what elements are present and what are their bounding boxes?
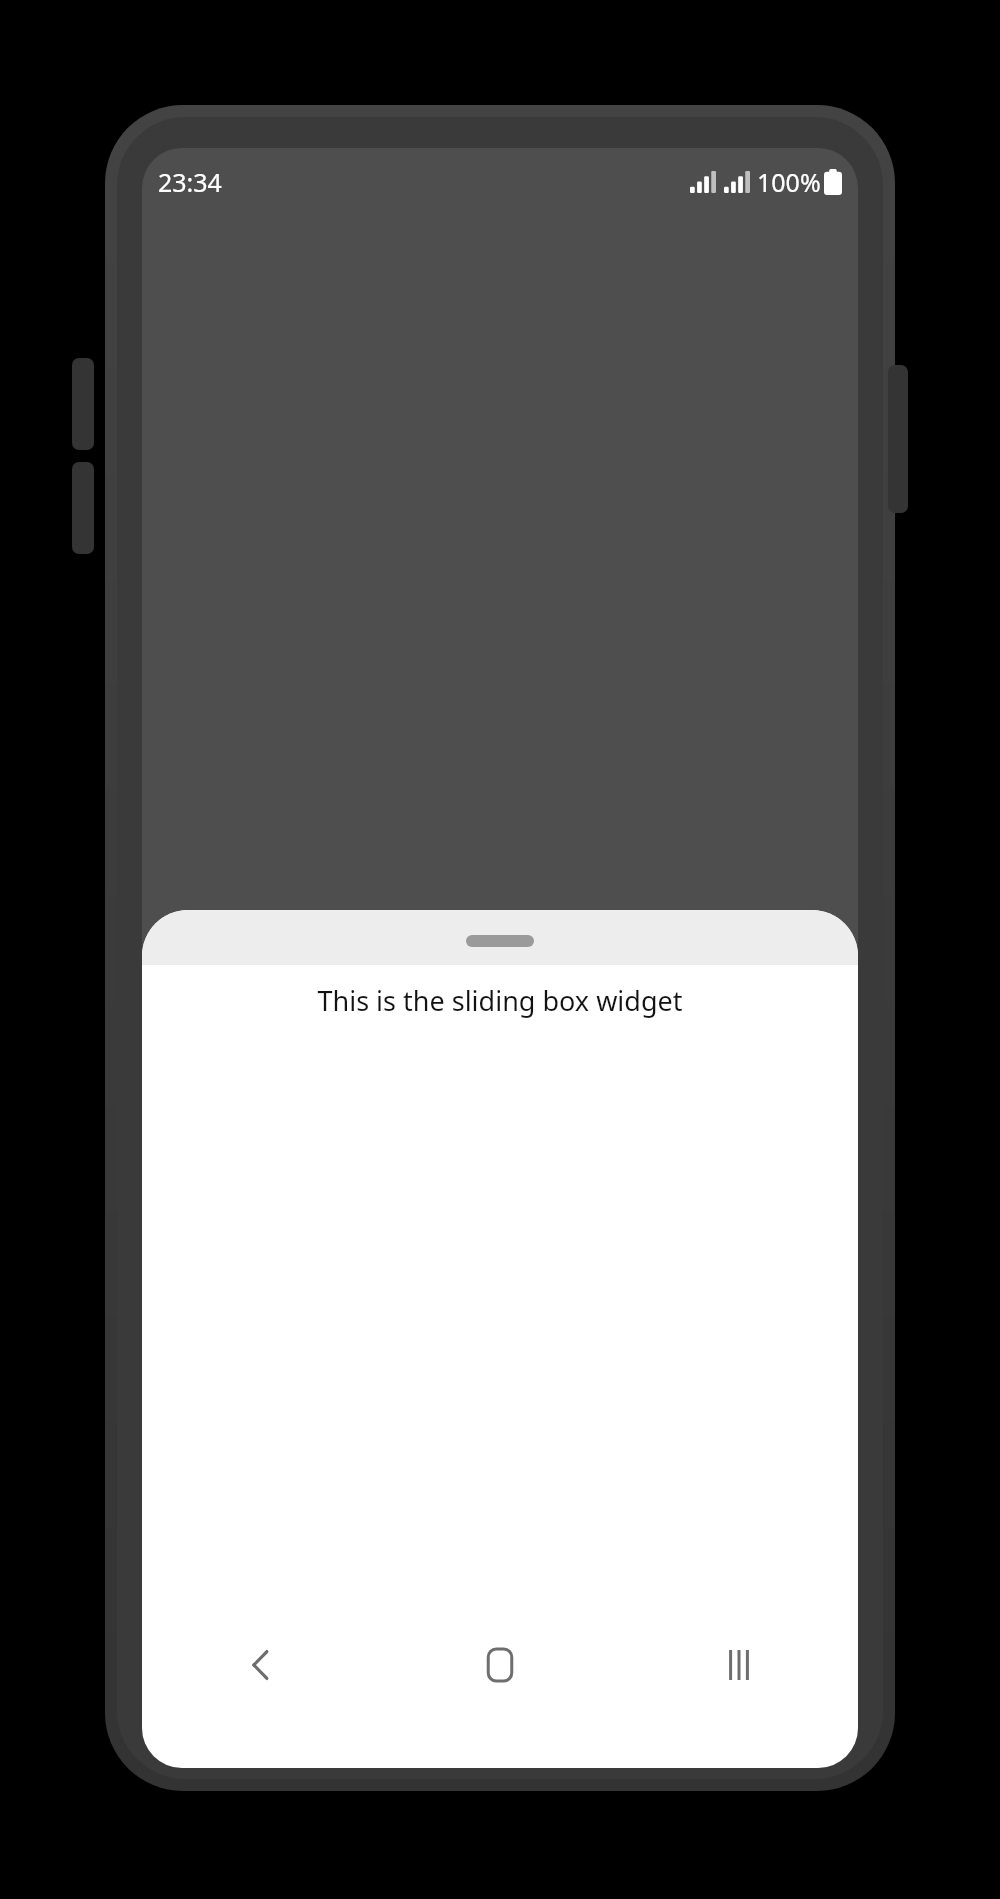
staticText: 23:34 [158,165,222,199]
button[interactable]: Home [380,1610,619,1720]
button[interactable]: Volume button [72,462,94,554]
button[interactable]: Recent apps [619,1610,858,1720]
button[interactable]: Back [142,1610,380,1720]
button[interactable]: Power button [888,365,908,513]
staticText: This is the sliding box widget [142,982,858,1019]
staticText: 100% [757,165,821,199]
button[interactable]: Bixby button [72,358,94,450]
button[interactable] [142,910,858,965]
